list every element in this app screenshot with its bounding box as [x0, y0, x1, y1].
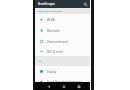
button[interactable]: Back [46, 82, 52, 90]
button[interactable]: Display [35, 66, 90, 77]
staticText: Datenverbrauch [47, 40, 69, 44]
button[interactable]: Search [83, 2, 88, 7]
staticText: Bluetooth [47, 29, 60, 33]
staticText: NFC & mehr [47, 50, 63, 54]
staticText: Ton & Benachrichtigungen [47, 80, 82, 84]
button[interactable]: Bluetooth [35, 25, 90, 36]
button[interactable]: Home [61, 82, 67, 90]
staticText: Display [47, 70, 57, 74]
button[interactable]: Recents [76, 82, 82, 90]
button[interactable]: Datenverbrauch [35, 36, 90, 47]
button[interactable]: NFC & mehr [35, 47, 90, 56]
staticText: DRAHTLOS & NETZWERKE [38, 10, 63, 13]
staticText: Einstellungen [38, 2, 56, 6]
staticText: WLAN [47, 18, 55, 22]
button[interactable]: Ton & Benachrichtigungen [35, 76, 90, 87]
staticText: GERÄT [39, 61, 43, 63]
button[interactable]: WLAN [35, 14, 90, 25]
